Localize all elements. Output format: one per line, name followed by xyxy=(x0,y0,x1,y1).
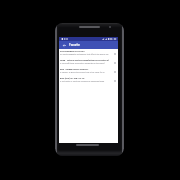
button[interactable]: RAM - Random access memory s xyxy=(59,67,118,76)
staticText: An electromagnetic disturbance that affe… xyxy=(60,53,112,55)
staticText: Favorite xyxy=(69,43,81,47)
staticText: AWG (wire) ULL ETA: ETL aa xyxy=(60,77,112,80)
button[interactable]: Back xyxy=(59,41,68,49)
button[interactable]: AWG (wire) ULL ETA: ETL aa xyxy=(59,76,118,85)
button[interactable]: Favorite xyxy=(112,58,118,67)
staticText: A memory in which the access time is the… xyxy=(60,71,112,73)
staticText: RAM - Random access memory s xyxy=(60,68,112,71)
button[interactable]: Favorite xyxy=(112,49,118,58)
staticText: NEMA - National Electrical Manufacturers… xyxy=(60,59,112,62)
staticText: A non-profit trade association supported… xyxy=(60,62,112,64)
staticText: A unit meter or electrical mechanical eq… xyxy=(60,80,112,82)
staticText: ELECTROMAGNETIC GLITCH xyxy=(60,50,112,53)
button[interactable]: Favorite xyxy=(112,76,118,85)
button[interactable]: ELECTROMAGNETIC GLITCH xyxy=(59,49,118,58)
button[interactable]: Favorite xyxy=(112,67,118,76)
button[interactable]: NEMA - National Electrical Manufacturers… xyxy=(59,58,118,67)
